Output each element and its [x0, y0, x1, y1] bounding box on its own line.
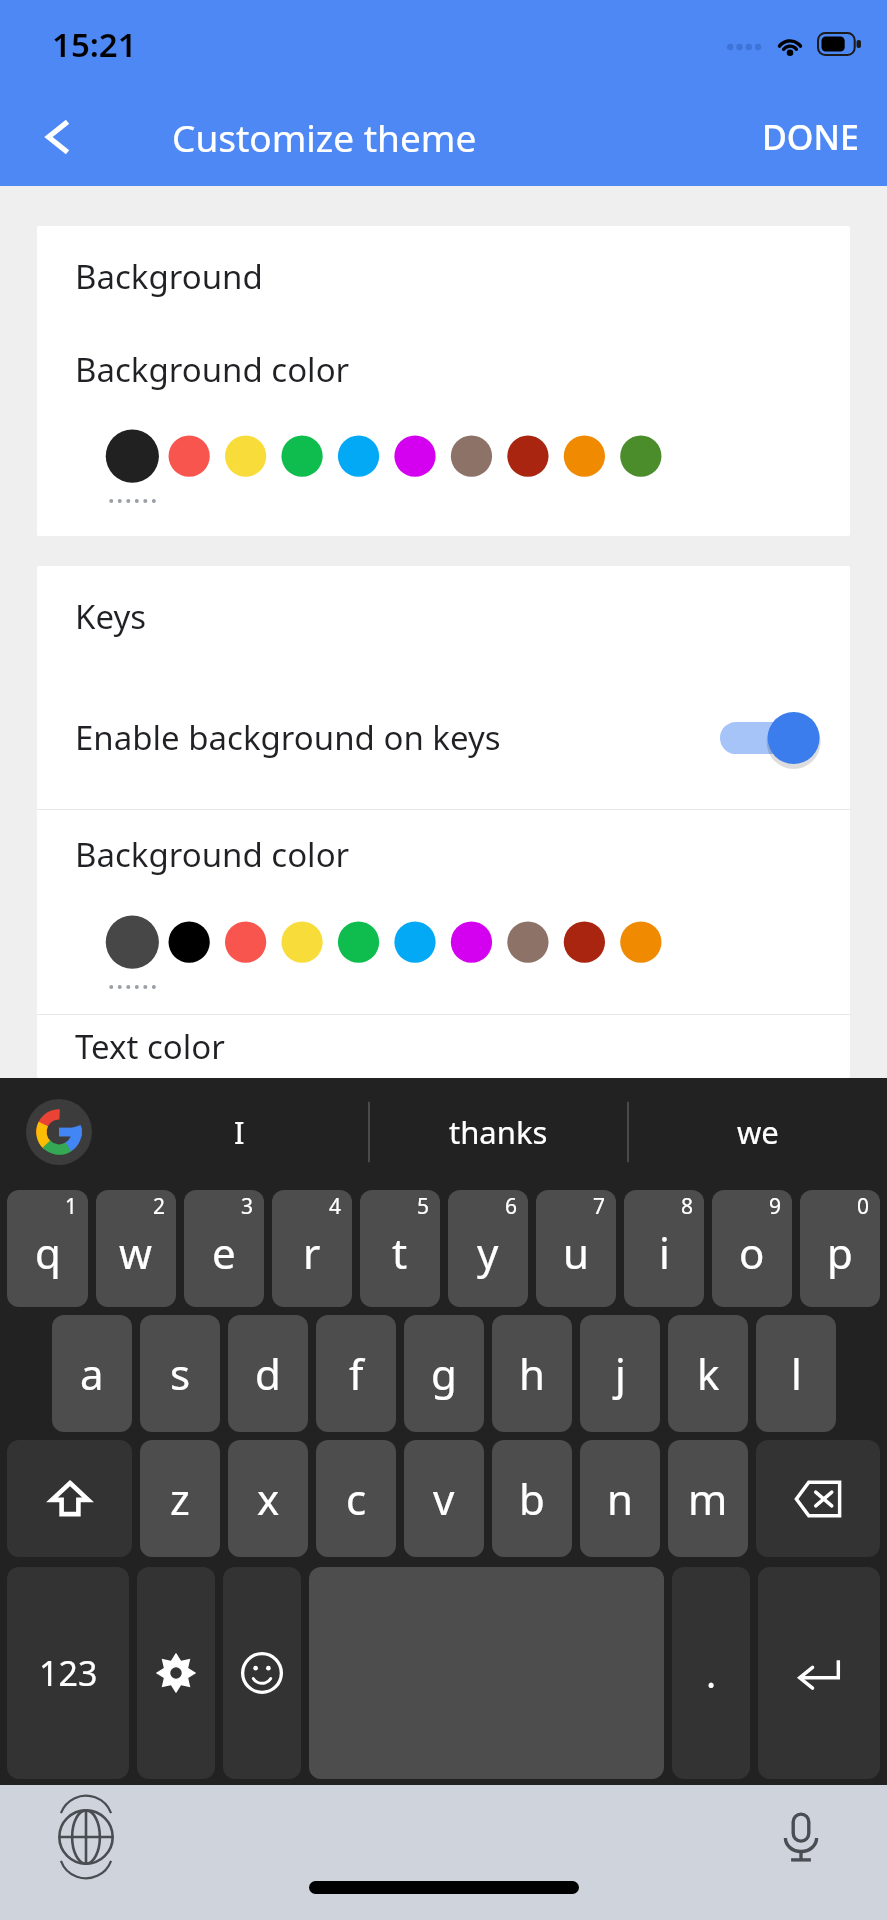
button[interactable]: Enter — [758, 1567, 880, 1779]
button[interactable]: thanks — [369, 1078, 628, 1186]
staticText: . — [706, 1647, 717, 1699]
button[interactable]: Settings — [137, 1567, 215, 1779]
button[interactable]: l — [756, 1315, 836, 1432]
staticText: 1 — [65, 1192, 78, 1221]
staticText: 8 — [681, 1192, 694, 1221]
staticText: 15:21 — [52, 22, 137, 67]
staticText: l — [791, 1345, 802, 1402]
staticText: 123 — [39, 1650, 98, 1696]
staticText: Background — [75, 254, 263, 299]
staticText: I — [234, 1111, 245, 1153]
staticText: Background color — [75, 832, 350, 877]
staticText: q — [35, 1224, 61, 1281]
button[interactable]: s — [140, 1315, 220, 1432]
button[interactable]: Back — [22, 101, 94, 173]
staticText: m — [688, 1470, 728, 1527]
staticText: Enable background on keys — [75, 715, 501, 760]
staticText: 2 — [153, 1192, 166, 1221]
button[interactable]: t — [360, 1190, 440, 1307]
button[interactable]: DONE — [734, 100, 887, 174]
staticText: 0 — [857, 1192, 870, 1221]
button[interactable]: y — [448, 1190, 528, 1307]
staticText: x — [257, 1470, 280, 1527]
staticText: we — [737, 1111, 779, 1153]
button[interactable]: z — [140, 1440, 220, 1557]
staticText: i — [659, 1224, 670, 1281]
staticText: p — [827, 1224, 853, 1281]
staticText: w — [119, 1224, 153, 1281]
button[interactable]: e — [184, 1190, 264, 1307]
staticText: s — [170, 1345, 191, 1402]
button[interactable]: Backspace — [756, 1440, 880, 1557]
button[interactable]: k — [668, 1315, 748, 1432]
staticText: v — [433, 1470, 455, 1527]
staticText: 5 — [417, 1192, 430, 1221]
staticText: f — [349, 1345, 364, 1402]
button[interactable]: c — [316, 1440, 396, 1557]
button[interactable]: 123 — [7, 1567, 129, 1779]
staticText: r — [303, 1224, 321, 1281]
staticText: d — [255, 1345, 281, 1402]
button[interactable]: Change language — [42, 1793, 130, 1881]
staticText: n — [607, 1470, 633, 1527]
button[interactable]: n — [580, 1440, 660, 1557]
staticText: g — [431, 1345, 457, 1402]
button[interactable]: i — [624, 1190, 704, 1307]
staticText: k — [697, 1345, 720, 1402]
button[interactable]: d — [228, 1315, 308, 1432]
staticText: 3 — [241, 1192, 254, 1221]
button[interactable]: I — [110, 1078, 369, 1186]
button[interactable]: f — [316, 1315, 396, 1432]
button[interactable]: . — [672, 1567, 750, 1779]
staticText: e — [212, 1224, 236, 1281]
staticText: 4 — [329, 1192, 342, 1221]
staticText: thanks — [449, 1111, 548, 1153]
staticText: u — [563, 1224, 589, 1281]
button[interactable]: u — [536, 1190, 616, 1307]
staticText: y — [477, 1224, 499, 1281]
button[interactable]: a — [52, 1315, 132, 1432]
button[interactable]: Enable background on keys — [37, 666, 850, 809]
staticText: b — [519, 1470, 545, 1527]
staticText: 6 — [505, 1192, 518, 1221]
button[interactable]: o — [712, 1190, 792, 1307]
staticText: Text color — [75, 1024, 225, 1069]
staticText: c — [346, 1470, 367, 1527]
button[interactable]: Google — [26, 1099, 92, 1165]
button[interactable]: g — [404, 1315, 484, 1432]
button[interactable]: w — [96, 1190, 176, 1307]
staticText: 9 — [769, 1192, 782, 1221]
button[interactable]: Voice input — [757, 1793, 845, 1881]
staticText: j — [615, 1345, 626, 1402]
button[interactable]: q — [7, 1190, 88, 1307]
button[interactable]: m — [668, 1440, 748, 1557]
staticText: h — [519, 1345, 545, 1402]
button[interactable]: p — [800, 1190, 880, 1307]
staticText: Customize theme — [172, 112, 477, 162]
staticText: t — [392, 1224, 408, 1281]
button[interactable]: x — [228, 1440, 308, 1557]
button[interactable]: r — [272, 1190, 352, 1307]
staticText: z — [170, 1470, 190, 1527]
button[interactable]: Emoji — [223, 1567, 301, 1779]
button[interactable]: h — [492, 1315, 572, 1432]
button[interactable]: b — [492, 1440, 572, 1557]
staticText: o — [739, 1224, 765, 1281]
staticText: Keys — [75, 594, 147, 639]
button[interactable]: v — [404, 1440, 484, 1557]
button[interactable]: we — [628, 1078, 887, 1186]
staticText: Background color — [75, 347, 350, 392]
staticText: 7 — [593, 1192, 606, 1221]
button[interactable]: Shift — [7, 1440, 132, 1557]
staticText: a — [80, 1345, 104, 1402]
button[interactable]: j — [580, 1315, 660, 1432]
staticText: DONE — [762, 114, 859, 160]
